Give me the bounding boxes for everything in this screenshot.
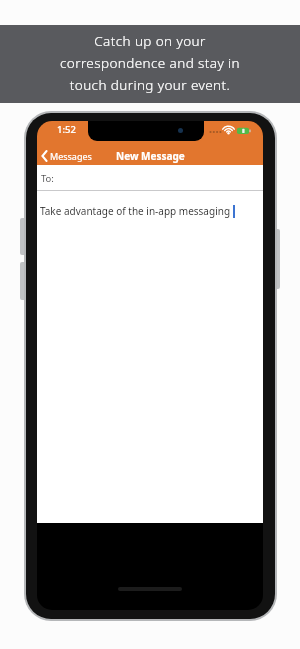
- button[interactable]: To:: [37, 165, 263, 190]
- staticText: Messages: [50, 150, 92, 162]
- button[interactable]: Messages: [41, 148, 92, 163]
- staticText: Catch up on your correspondence and stay…: [60, 32, 240, 94]
- button[interactable]: Take advantage of the in-app messaging: [40, 204, 235, 218]
- staticText: To:: [41, 172, 54, 185]
- staticText: New Message: [116, 149, 185, 163]
- staticText: Take advantage of the in-app messaging: [40, 204, 231, 218]
- staticText: 1:52: [57, 123, 76, 136]
